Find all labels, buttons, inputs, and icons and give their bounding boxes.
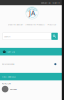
button[interactable]: Contact us bbox=[40, 0, 52, 5]
staticText: Creative Design · Innovative Products · … bbox=[7, 23, 56, 26]
staticText: Car Accessories bbox=[2, 63, 15, 65]
button[interactable]: Cart (0) bbox=[0, 48, 64, 55]
staticText: SELLERS bbox=[10, 88, 17, 90]
button[interactable]: Sign in bbox=[52, 0, 61, 5]
staticText: NEW ARRIVALS bbox=[1, 75, 15, 78]
staticText: Search bbox=[4, 35, 10, 38]
button[interactable]: Car Accessories bbox=[0, 55, 64, 73]
button[interactable]: Search bbox=[51, 33, 58, 40]
staticText: Cart (0) bbox=[7, 50, 15, 53]
staticText: Sign in bbox=[53, 1, 60, 4]
staticText: Contact us bbox=[41, 1, 51, 4]
staticText: POPULAR bbox=[1, 82, 10, 85]
staticText: JA bbox=[29, 8, 35, 17]
